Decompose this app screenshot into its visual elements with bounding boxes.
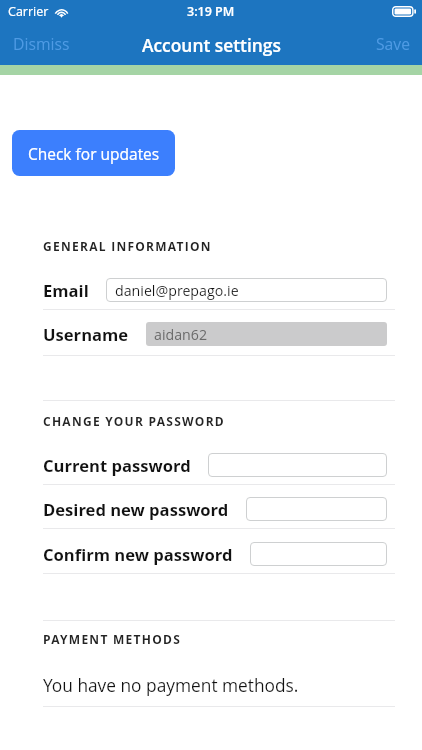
staticText: Dismiss (13, 33, 70, 54)
staticText: Confirm new password (43, 543, 233, 566)
staticText: 3:19 PM (187, 3, 235, 20)
other: Battery (392, 6, 416, 17)
button[interactable] (250, 542, 387, 566)
staticText: Current password (43, 454, 191, 477)
button[interactable]: aidan62 (146, 322, 387, 346)
staticText: Check for updates (28, 143, 160, 164)
staticText: aidan62 (154, 325, 207, 344)
staticText: Desired new password (43, 498, 229, 521)
button[interactable]: Dismiss (0, 27, 83, 60)
staticText: Email (43, 279, 89, 302)
staticText: Account settings (142, 33, 281, 57)
staticText: CHANGE YOUR PASSWORD (43, 413, 225, 429)
button[interactable]: Check for updates (12, 130, 175, 176)
button[interactable] (208, 453, 387, 477)
staticText: Carrier (8, 3, 49, 20)
staticText: PAYMENT METHODS (43, 631, 182, 647)
other: Wi-Fi (54, 6, 69, 17)
staticText: Username (43, 323, 129, 346)
button[interactable] (246, 497, 387, 521)
button[interactable]: daniel@prepago.ie (106, 278, 387, 302)
staticText: Save (376, 33, 410, 54)
staticText: GENERAL INFORMATION (43, 238, 212, 254)
staticText: You have no payment methods. (43, 674, 299, 698)
staticText: daniel@prepago.ie (115, 281, 239, 300)
button[interactable]: Save (364, 27, 422, 60)
